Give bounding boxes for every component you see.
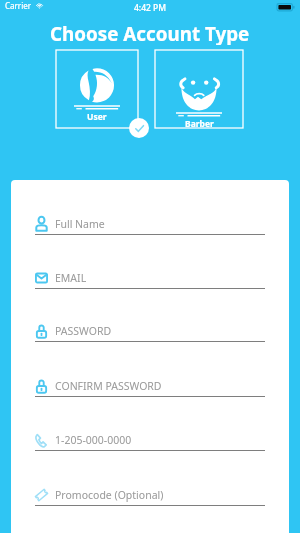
staticText: Full Name — [55, 217, 105, 231]
button[interactable]: User — [56, 50, 138, 128]
button[interactable]: PASSWORD — [35, 289, 265, 342]
staticText: Barber — [185, 118, 214, 128]
staticText: EMAIL — [55, 271, 87, 285]
button[interactable]: Promocode (Optional) — [35, 451, 265, 506]
button[interactable]: Selected — [129, 118, 149, 138]
staticText: 1-205-000-0000 — [55, 433, 132, 447]
staticText: Choose Account Type — [50, 21, 250, 45]
staticText: Promocode (Optional) — [55, 488, 164, 502]
staticText: User — [87, 111, 107, 123]
button[interactable]: Barber — [155, 50, 243, 128]
staticText: PASSWORD — [55, 324, 112, 338]
staticText: CONFIRM PASSWORD — [55, 379, 162, 393]
button[interactable]: EMAIL — [35, 235, 265, 289]
button[interactable]: Full Name — [35, 180, 265, 235]
staticText: 4:42 PM — [134, 2, 167, 14]
staticText: Carrier — [5, 0, 32, 11]
button[interactable]: CONFIRM PASSWORD — [35, 342, 265, 397]
button[interactable]: 1-205-000-0000 — [35, 397, 265, 451]
